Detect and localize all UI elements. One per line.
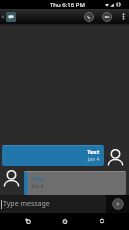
button[interactable]: Navigate up	[0, 9, 16, 24]
button[interactable]: Power	[58, 214, 71, 227]
button[interactable]: Back	[21, 214, 34, 227]
button[interactable]: Call	[84, 12, 94, 22]
button[interactable]: Type message	[0, 195, 106, 213]
staticText: Test	[32, 175, 45, 183]
staticText: Jan 4	[32, 183, 44, 190]
button[interactable]: Video call	[102, 12, 112, 22]
staticText: Jan 4	[88, 156, 100, 163]
button[interactable]: Rotate	[95, 214, 108, 227]
button[interactable]: Test	[24, 171, 126, 195]
staticText: Thu 6:16 PM	[50, 1, 85, 9]
button[interactable]: More options	[117, 9, 129, 24]
staticText: Type message	[3, 199, 50, 209]
button[interactable]: Send	[112, 198, 124, 210]
staticText: Test	[87, 148, 100, 156]
button[interactable]: Test	[2, 145, 104, 166]
